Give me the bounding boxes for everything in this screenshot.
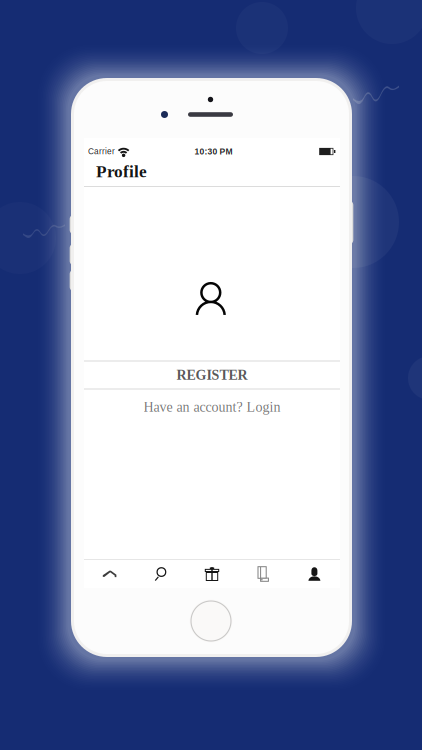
button[interactable]: Have an account? Login xyxy=(84,392,340,422)
button[interactable]: REGISTER xyxy=(84,361,340,389)
button[interactable]: Search xyxy=(135,560,186,588)
button[interactable]: Profile xyxy=(289,560,340,588)
staticText: Profile xyxy=(96,162,147,181)
staticText: Have an account? Login xyxy=(143,399,280,415)
button[interactable]: Gifts xyxy=(186,560,238,588)
button[interactable]: Profile xyxy=(84,159,340,183)
staticText: 10:30 PM xyxy=(194,147,232,156)
staticText: REGISTER xyxy=(176,367,247,383)
button[interactable]: Shop xyxy=(84,560,135,588)
staticText: Carrier xyxy=(88,147,115,156)
button[interactable]: Orders xyxy=(238,560,289,588)
